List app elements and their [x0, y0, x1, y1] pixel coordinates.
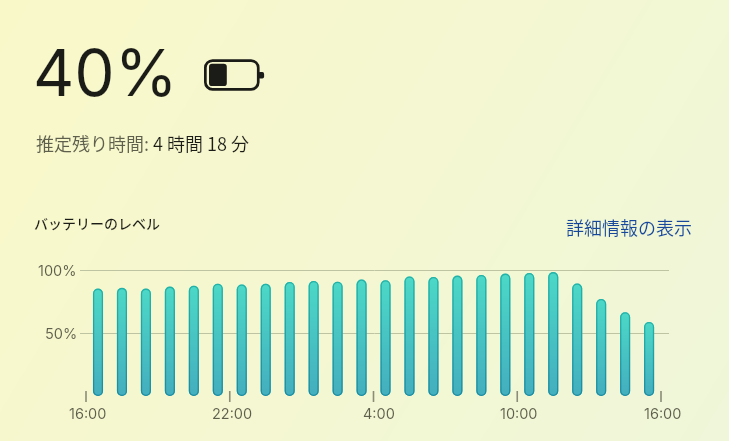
- staticText: 詳細情報の表示: [566, 214, 692, 240]
- staticText: 100%: [38, 262, 77, 280]
- staticText: 10:00: [500, 405, 538, 423]
- staticText: 22:00: [212, 405, 253, 423]
- staticText: バッテリーのレベル: [34, 213, 160, 233]
- staticText: 16:00: [644, 405, 682, 423]
- staticText: 50%: [45, 325, 78, 343]
- staticText: 16:00: [69, 405, 107, 423]
- staticText: 推定残り時間: 4 時間 18 分: [36, 130, 250, 156]
- button[interactable]: 詳細情報の表示: [562, 210, 696, 244]
- staticText: 4:00: [363, 405, 395, 423]
- staticText: 40%: [33, 34, 178, 111]
